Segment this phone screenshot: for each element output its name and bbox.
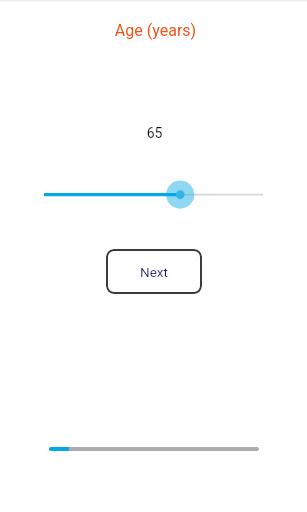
other: Questionnaire progress xyxy=(49,447,259,451)
staticText: Next xyxy=(140,264,168,280)
button[interactable]: Age slider, 65 years xyxy=(24,174,283,214)
staticText: 65 xyxy=(1,125,307,141)
staticText: Age (years) xyxy=(2,21,307,40)
button[interactable]: Next xyxy=(106,249,202,294)
